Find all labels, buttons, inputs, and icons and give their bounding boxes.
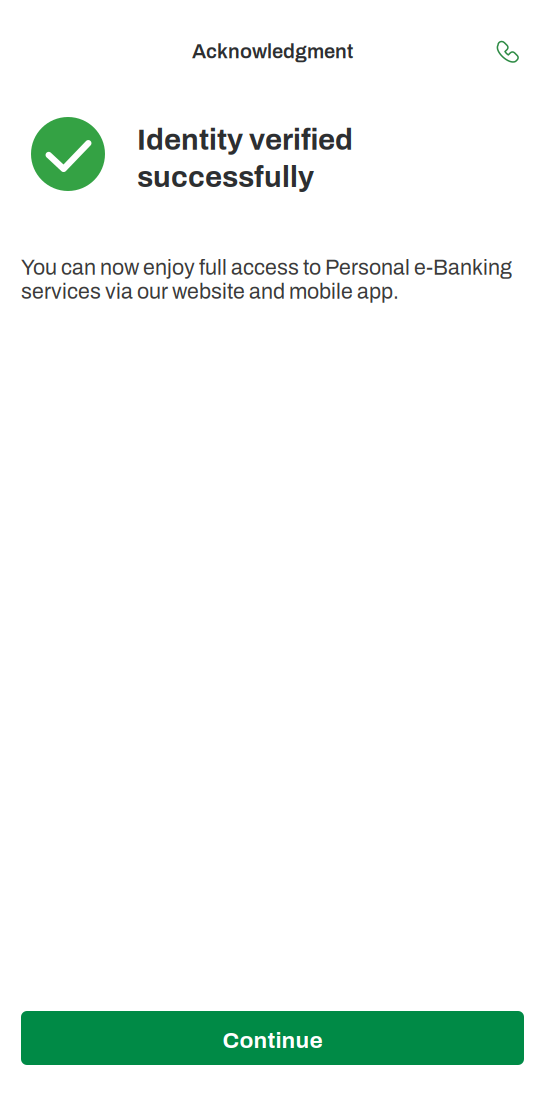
staticText: Identity verified successfully	[137, 124, 353, 193]
button[interactable]: Call us	[483, 30, 545, 72]
staticText: You can now enjoy full access to Persona…	[21, 256, 512, 303]
staticText: Continue	[222, 1028, 322, 1053]
button[interactable]: Continue	[21, 1011, 524, 1065]
staticText: Acknowledgment	[192, 41, 353, 62]
